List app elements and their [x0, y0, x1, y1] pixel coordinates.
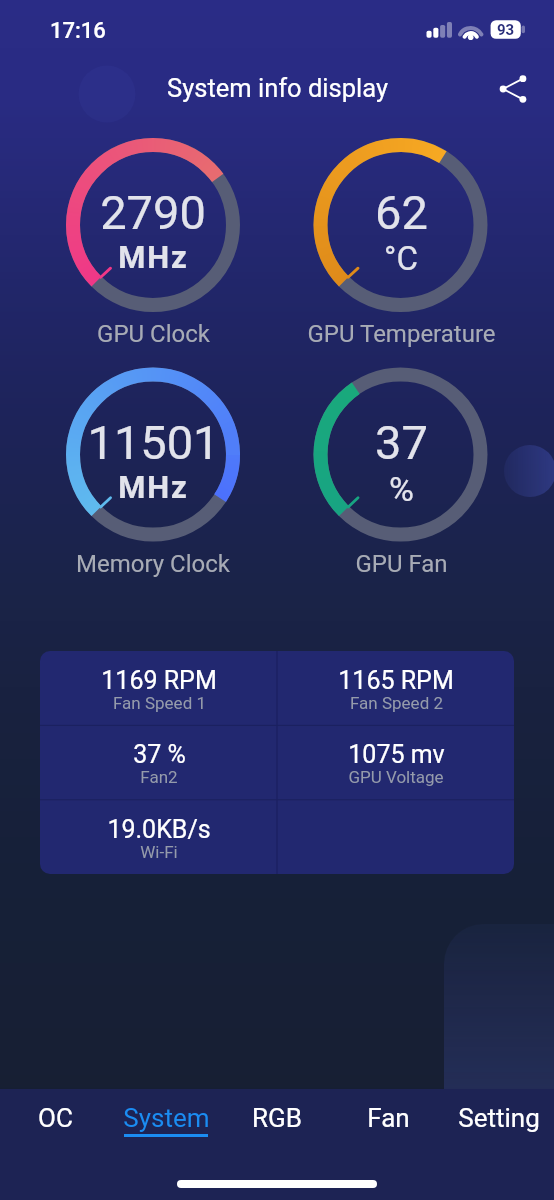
staticText: 17:16 — [50, 18, 106, 44]
staticText: 2790 — [100, 185, 206, 240]
button[interactable] — [313, 137, 489, 313]
button[interactable] — [222, 1089, 333, 1149]
button[interactable] — [0, 1089, 111, 1149]
staticText: 62 — [375, 185, 428, 240]
button[interactable] — [443, 1089, 554, 1149]
button[interactable]: Share — [490, 66, 536, 112]
staticText: Memory Clock — [76, 550, 230, 578]
staticText: MHz — [118, 469, 189, 505]
staticText: Fan Speed 1 — [113, 693, 206, 713]
staticText: 1169 RPM — [101, 666, 217, 695]
button[interactable] — [65, 367, 241, 543]
staticText: 37 — [375, 415, 428, 470]
button[interactable] — [277, 725, 514, 799]
button[interactable] — [40, 800, 277, 874]
staticText: °C — [384, 239, 418, 278]
staticText: 37 % — [133, 740, 186, 769]
staticText: System info display — [167, 73, 388, 103]
staticText: OC — [38, 1103, 73, 1133]
staticText: Fan Speed 2 — [350, 693, 443, 713]
button[interactable] — [313, 367, 489, 543]
staticText: RGB — [252, 1103, 302, 1133]
staticText: GPU Clock — [97, 320, 210, 348]
button[interactable] — [40, 725, 277, 799]
staticText: System — [123, 1103, 210, 1133]
staticText: GPU Voltage — [348, 767, 444, 787]
button[interactable] — [277, 651, 514, 725]
staticText: 19.0KB/s — [107, 815, 211, 844]
staticText: MHz — [118, 239, 189, 275]
staticText: 1075 mv — [348, 740, 445, 769]
staticText: % — [389, 469, 414, 509]
button[interactable] — [40, 651, 277, 725]
button[interactable] — [332, 1089, 443, 1149]
staticText: 11501 — [87, 415, 220, 470]
staticText: 93 — [497, 21, 515, 39]
staticText: Fan2 — [140, 767, 178, 787]
staticText: Wi-Fi — [140, 842, 178, 862]
button[interactable] — [65, 137, 241, 313]
staticText: GPU Temperature — [307, 320, 496, 348]
button[interactable] — [111, 1089, 222, 1149]
staticText: Fan — [367, 1103, 410, 1133]
staticText: Setting — [458, 1103, 540, 1133]
staticText: 1165 RPM — [338, 666, 454, 695]
staticText: GPU Fan — [355, 550, 448, 578]
